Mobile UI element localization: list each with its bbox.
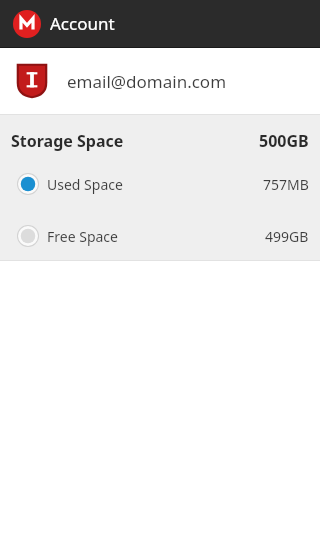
staticText: 500GB [259,130,309,152]
button[interactable]: MEGA logo [0,0,320,47]
other: MEGA logo [13,10,41,38]
staticText: email@domain.com [67,70,227,93]
staticText: Free Space [47,227,118,246]
button[interactable]: Used Space [0,171,320,197]
button[interactable]: Free Space [0,223,320,249]
staticText: Used Space [47,175,123,194]
other: Account security shield [14,61,50,101]
staticText: 757MB [263,175,309,194]
staticText: Account [50,12,115,35]
staticText: Storage Space [11,130,124,152]
button[interactable]: Storage Space [0,126,320,156]
staticText: 499GB [265,227,309,246]
button[interactable]: Account security shield [0,48,320,114]
